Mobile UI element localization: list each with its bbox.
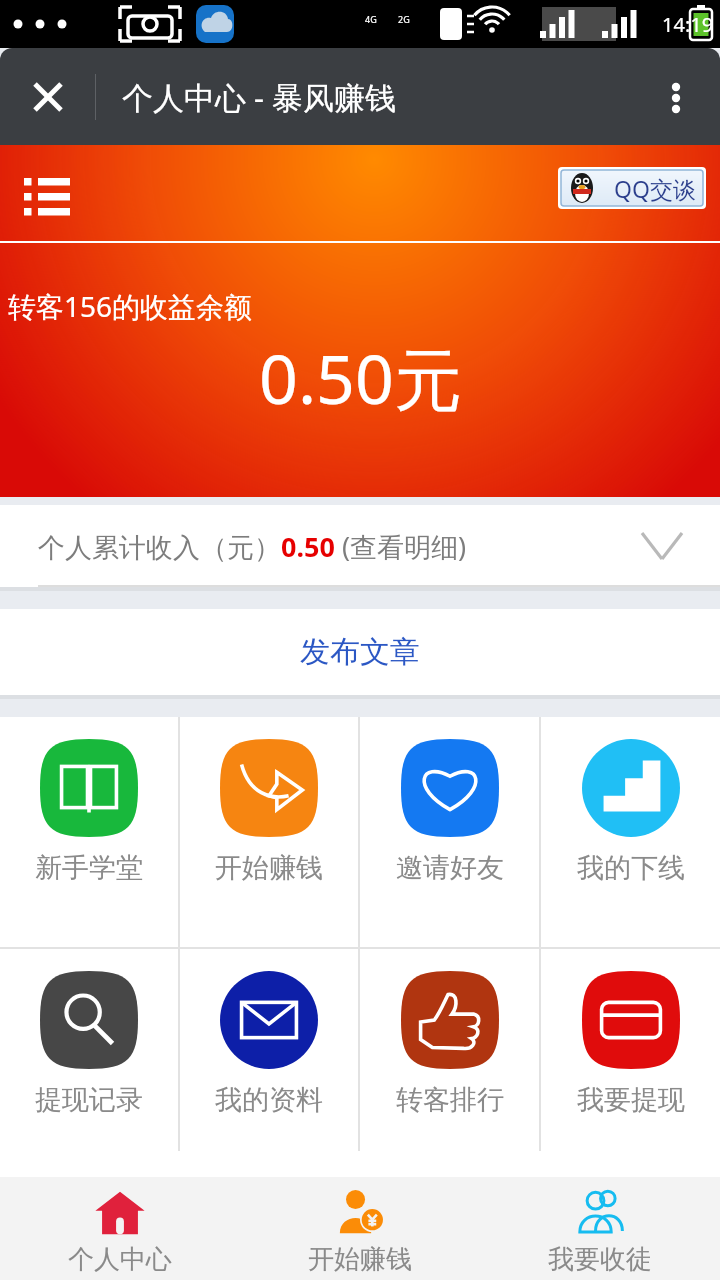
button[interactable]: 提现记录: [0, 949, 178, 1151]
button[interactable]: Close: [14, 63, 82, 131]
button[interactable]: 我要收徒: [480, 1177, 720, 1280]
button[interactable]: 我要提现: [541, 949, 720, 1151]
staticText: 开始赚钱: [215, 851, 323, 885]
staticText: 新手学堂: [35, 851, 143, 885]
staticText: 我的资料: [215, 1083, 323, 1117]
button[interactable]: 我的资料: [180, 949, 358, 1151]
staticText: 14:19: [662, 11, 714, 38]
staticText: 开始赚钱: [308, 1243, 412, 1276]
button[interactable]: 发布文章: [0, 609, 720, 695]
button[interactable]: 邀请好友: [360, 717, 539, 947]
staticText: 个人中心 - 暴风赚钱: [122, 76, 397, 118]
staticText: 个人中心: [68, 1243, 172, 1276]
staticText: 我的下线: [577, 851, 685, 885]
staticText: 我要收徒: [548, 1243, 652, 1276]
staticText: 我要提现: [577, 1083, 685, 1117]
staticText: QQ交谈: [614, 173, 696, 204]
button[interactable]: 新手学堂: [0, 717, 178, 947]
button[interactable]: 我的下线: [541, 717, 720, 947]
button[interactable]: 个人累计收入（元）0.50 (查看明细): [0, 505, 720, 587]
staticText: 4G: [365, 13, 377, 25]
staticText: 0.50元: [259, 331, 462, 424]
staticText: 转客156的收益余额: [8, 287, 253, 325]
button[interactable]: 个人中心: [0, 1177, 240, 1280]
staticText: 2G: [398, 13, 410, 25]
staticText: 转客排行: [396, 1083, 504, 1117]
staticText: 提现记录: [35, 1083, 143, 1117]
button[interactable]: More options: [642, 63, 710, 131]
button[interactable]: Menu: [16, 163, 78, 225]
button[interactable]: 转客排行: [360, 949, 539, 1151]
staticText: 邀请好友: [396, 851, 504, 885]
staticText: 个人累计收入（元）0.50 (查看明细): [38, 528, 467, 565]
staticText: 发布文章: [300, 633, 420, 671]
button[interactable]: 开始赚钱: [240, 1177, 480, 1280]
button[interactable]: QQ交谈: [558, 167, 706, 209]
button[interactable]: 开始赚钱: [180, 717, 358, 947]
